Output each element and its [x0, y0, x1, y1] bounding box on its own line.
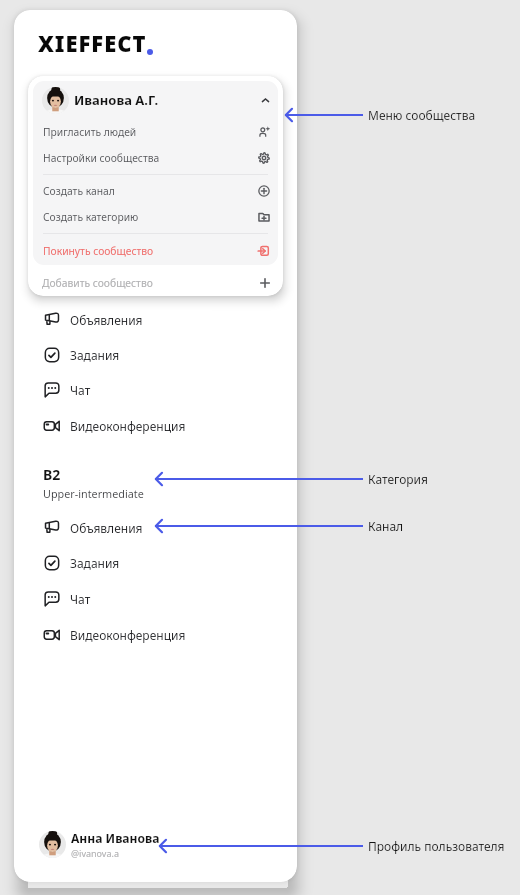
staticText: Задания: [70, 555, 120, 571]
staticText: Добавить сообщество: [42, 276, 153, 290]
button[interactable]: Чат: [14, 582, 297, 616]
staticText: Видеоконференция: [70, 627, 186, 643]
staticText: Объявления: [70, 520, 143, 536]
button[interactable]: Добавить сообщество: [28, 270, 283, 296]
staticText: Создать канал: [43, 184, 115, 198]
staticText: Анна Иванова: [71, 830, 160, 846]
staticText: Профиль пользователя: [368, 838, 505, 854]
button[interactable]: Чат: [14, 373, 297, 407]
staticText: Задания: [70, 347, 120, 363]
staticText: Канал: [368, 518, 404, 534]
button[interactable]: B2: [43, 463, 144, 503]
staticText: Категория: [368, 471, 428, 487]
button[interactable]: Видеоконференция: [14, 409, 297, 443]
button[interactable]: Задания: [14, 546, 297, 580]
staticText: @ivanova.a: [71, 847, 119, 859]
button[interactable]: XIEFFECT: [38, 28, 153, 58]
staticText: Меню сообщества: [368, 107, 476, 123]
button[interactable]: Задания: [14, 338, 297, 372]
staticText: Объявления: [70, 312, 143, 328]
staticText: Настройки сообщества: [43, 151, 160, 165]
staticText: Upper-intermediate: [43, 486, 144, 501]
button[interactable]: Создать категорию: [33, 204, 278, 230]
button[interactable]: Анна Иванова: [14, 824, 297, 864]
staticText: Покинуть сообщество: [43, 244, 154, 258]
staticText: XIEFFECT: [38, 28, 147, 58]
button[interactable]: Настройки сообщества: [33, 145, 278, 171]
staticText: B2: [43, 465, 61, 484]
staticText: Чат: [70, 591, 91, 607]
staticText: Создать категорию: [43, 210, 139, 224]
button[interactable]: Свернуть: [258, 93, 272, 107]
button[interactable]: Пригласить людей: [33, 119, 278, 145]
staticText: Пригласить людей: [43, 125, 137, 139]
button[interactable]: Создать канал: [33, 178, 278, 204]
staticText: Чат: [70, 382, 91, 398]
button[interactable]: Покинуть сообщество: [33, 237, 278, 265]
button[interactable]: Иванова А.Г.: [33, 81, 278, 119]
button[interactable]: Объявления: [14, 511, 297, 545]
button[interactable]: Видеоконференция: [14, 618, 297, 652]
staticText: Видеоконференция: [70, 418, 186, 434]
staticText: Иванова А.Г.: [74, 91, 159, 109]
button[interactable]: Объявления: [14, 303, 297, 337]
